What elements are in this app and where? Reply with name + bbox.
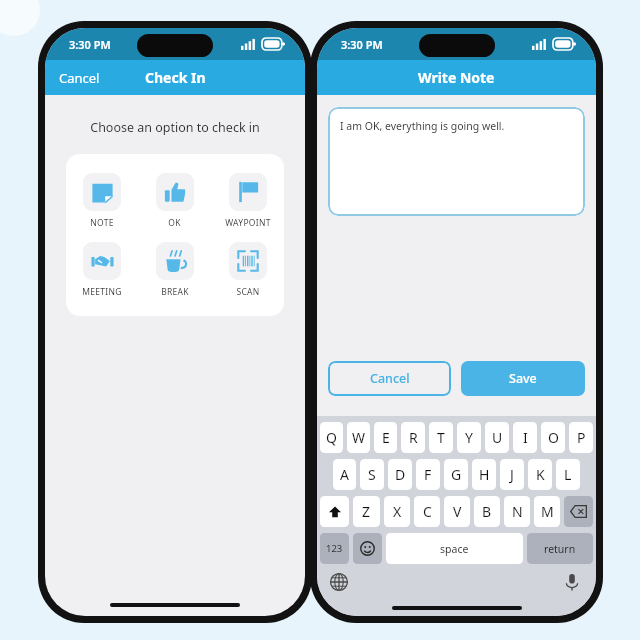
button[interactable]: space — [386, 533, 523, 564]
button[interactable]: T — [429, 422, 453, 453]
button[interactable]: H — [472, 459, 496, 490]
staticText: Choose an option to check in — [45, 119, 305, 136]
button[interactable]: D — [388, 459, 412, 490]
staticText: Cancel — [370, 370, 410, 387]
staticText: V — [453, 502, 462, 521]
button[interactable]: O — [541, 422, 565, 453]
staticText: Q — [326, 428, 337, 447]
button[interactable]: Y — [457, 422, 481, 453]
staticText: R — [409, 428, 418, 447]
button[interactable]: Emoji — [353, 533, 382, 564]
staticText: U — [492, 428, 503, 447]
button[interactable]: C — [414, 496, 440, 527]
button[interactable]: Cancel — [45, 63, 114, 93]
staticText: B — [482, 502, 492, 521]
staticText: W — [352, 428, 366, 447]
button[interactable]: E — [374, 422, 397, 453]
button[interactable]: NOTE — [66, 166, 138, 235]
button[interactable]: Save — [461, 361, 585, 396]
staticText: J — [510, 465, 514, 484]
staticText: T — [437, 428, 445, 447]
staticText: 3:30 PM — [341, 37, 383, 52]
staticText: G — [451, 465, 462, 484]
button[interactable]: SCAN — [211, 235, 284, 304]
staticText: E — [382, 428, 390, 447]
staticText: M — [541, 502, 554, 521]
staticText: L — [564, 465, 572, 484]
staticText: return — [544, 542, 576, 556]
button[interactable]: S — [360, 459, 384, 490]
button[interactable]: return — [527, 533, 593, 564]
button[interactable]: WAYPOINT — [211, 166, 284, 235]
staticText: D — [395, 465, 406, 484]
button[interactable]: OK — [138, 166, 211, 235]
button[interactable]: P — [569, 422, 593, 453]
button[interactable]: MEETING — [66, 235, 138, 304]
button[interactable]: M — [534, 496, 560, 527]
button[interactable]: Q — [320, 422, 343, 453]
button[interactable]: Backspace — [564, 496, 593, 527]
staticText: MEETING — [82, 286, 122, 298]
staticText: A — [340, 465, 349, 484]
button[interactable]: Dictate — [562, 572, 582, 592]
button[interactable]: Change keyboard — [329, 572, 349, 592]
staticText: Save — [509, 370, 537, 387]
staticText: Cancel — [59, 69, 100, 87]
staticText: X — [393, 502, 402, 521]
button[interactable]: X — [384, 496, 410, 527]
button[interactable]: N — [504, 496, 530, 527]
staticText: N — [512, 502, 523, 521]
button[interactable]: Shift — [320, 496, 349, 527]
button[interactable]: W — [347, 422, 370, 453]
button[interactable]: G — [444, 459, 468, 490]
button[interactable]: L — [556, 459, 580, 490]
staticText: S — [368, 465, 376, 484]
staticText: I — [523, 428, 528, 447]
staticText: BREAK — [161, 286, 189, 298]
staticText: O — [548, 428, 559, 447]
button[interactable]: V — [444, 496, 470, 527]
staticText: P — [577, 428, 586, 447]
button[interactable]: K — [528, 459, 552, 490]
button[interactable]: I am OK, everything is going well. — [328, 107, 585, 216]
staticText: space — [440, 542, 469, 556]
staticText: H — [479, 465, 490, 484]
staticText: Y — [465, 428, 473, 447]
staticText: WAYPOINT — [225, 217, 271, 229]
button[interactable]: F — [416, 459, 440, 490]
staticText: I am OK, everything is going well. — [340, 119, 505, 133]
button[interactable]: B — [474, 496, 500, 527]
staticText: Check In — [145, 68, 206, 87]
staticText: 123 — [326, 542, 343, 555]
button[interactable]: I — [513, 422, 537, 453]
staticText: NOTE — [90, 217, 114, 229]
staticText: Write Note — [418, 68, 495, 87]
staticText: SCAN — [236, 286, 260, 298]
staticText: K — [536, 465, 545, 484]
staticText: Z — [362, 502, 371, 521]
button[interactable]: U — [485, 422, 509, 453]
button[interactable]: J — [500, 459, 524, 490]
staticText: 3:30 PM — [69, 37, 111, 52]
button[interactable]: BREAK — [138, 235, 211, 304]
staticText: OK — [168, 217, 181, 229]
button[interactable]: Z — [353, 496, 380, 527]
staticText: C — [423, 502, 432, 521]
button[interactable]: Cancel — [328, 361, 451, 396]
staticText: F — [424, 465, 432, 484]
button[interactable]: 123 — [320, 533, 349, 564]
button[interactable]: R — [401, 422, 425, 453]
button[interactable]: A — [333, 459, 356, 490]
